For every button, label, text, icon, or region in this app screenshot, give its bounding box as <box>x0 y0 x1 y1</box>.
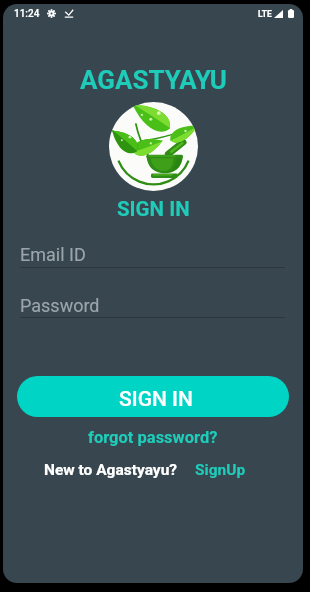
staticText: forgot password? <box>88 428 218 447</box>
staticText: Password <box>20 295 100 316</box>
staticText: SIGN IN <box>117 197 190 221</box>
staticText: SignUp <box>195 461 246 479</box>
staticText: LTE <box>258 9 272 19</box>
staticText: Email ID <box>20 244 86 265</box>
staticText: 11:24 <box>14 8 40 20</box>
staticText: New to Agastyayu? <box>44 461 178 479</box>
button[interactable]: forgot password? <box>88 428 218 447</box>
button[interactable]: SignUp <box>195 461 246 479</box>
button[interactable]: Email ID <box>20 244 285 265</box>
staticText: AGASTYAYU <box>80 65 227 95</box>
button[interactable]: Password <box>20 295 285 316</box>
staticText: SIGN IN <box>119 387 193 412</box>
button[interactable]: SIGN IN <box>17 376 289 417</box>
